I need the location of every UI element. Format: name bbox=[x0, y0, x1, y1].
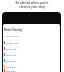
staticText: Teal Line bbox=[6, 59, 16, 62]
button[interactable]: Gold Line bbox=[3, 63, 60, 69]
staticText: Blue Line bbox=[6, 53, 17, 56]
staticText: Nearby stops bbox=[5, 35, 19, 38]
staticText: Metro Nearby bbox=[4, 28, 22, 32]
staticText: Gold Line bbox=[6, 65, 17, 68]
staticText: Green Line bbox=[6, 41, 19, 44]
button[interactable]: Pink Line bbox=[3, 45, 60, 51]
button[interactable]: Red Line bbox=[3, 69, 60, 72]
staticText: Be alerted when you're close to your sto… bbox=[15, 1, 49, 9]
button[interactable]: Blue Line bbox=[3, 51, 60, 57]
button[interactable]: Green Line bbox=[3, 39, 60, 45]
staticText: Pink Line bbox=[6, 47, 17, 50]
staticText: Red Line bbox=[6, 69, 16, 72]
button[interactable]: Teal Line bbox=[3, 57, 60, 63]
